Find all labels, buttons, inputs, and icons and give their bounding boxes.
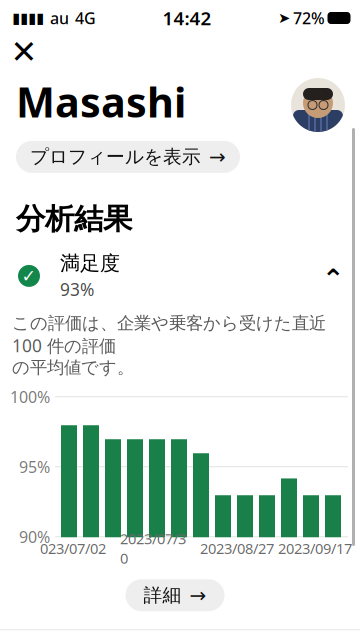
staticText: ✕: [10, 34, 37, 70]
staticText: 詳細: [143, 584, 181, 607]
staticText: ▮▮▮▮: [12, 10, 44, 26]
staticText: 満足度: [60, 251, 120, 276]
staticText: 2023/08/27: [200, 538, 274, 558]
staticText: →: [209, 145, 226, 168]
button[interactable]: ✓: [0, 253, 360, 299]
staticText: 2023/09/17: [278, 538, 352, 558]
button[interactable]: プロフィールを表示: [16, 141, 240, 173]
staticText: 分析結果: [16, 201, 132, 237]
staticText: 14:42: [162, 6, 211, 30]
staticText: ✓: [21, 266, 36, 286]
staticText: 72%: [293, 7, 325, 29]
staticText: ⌃: [322, 264, 344, 294]
staticText: →: [189, 584, 206, 607]
staticText: au: [50, 7, 69, 29]
staticText: 100%: [10, 386, 50, 407]
staticText: 93%: [60, 278, 94, 301]
staticText: 023/07/02: [40, 538, 106, 558]
staticText: この評価は、企業や乗客から受けた直近 100 件の評価 の平均値です。: [12, 311, 326, 378]
staticText: Masashi: [16, 74, 186, 129]
button[interactable]: 詳細: [125, 579, 224, 611]
staticText: 95%: [19, 456, 50, 477]
button[interactable]: 閉じる: [2, 34, 46, 70]
staticText: 4G: [75, 7, 96, 29]
staticText: ➤: [278, 10, 290, 26]
staticText: 2023/07/30: [120, 529, 186, 568]
staticText: 90%: [19, 526, 50, 547]
staticText: プロフィールを表示: [30, 145, 201, 168]
